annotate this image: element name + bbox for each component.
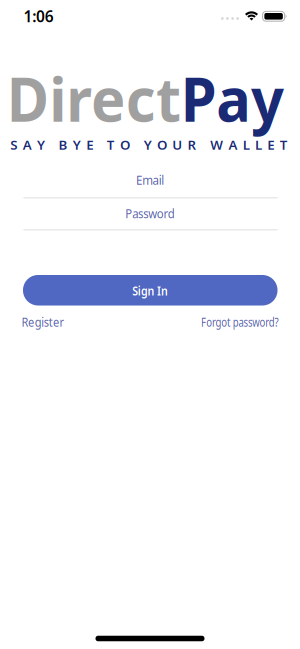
staticText: O (120, 136, 130, 153)
staticText: A (228, 136, 237, 153)
staticText: 1:06 (23, 5, 54, 27)
staticText: Y (73, 136, 81, 153)
staticText: Register (17, 313, 69, 330)
staticText: A (23, 136, 32, 153)
staticText: T (280, 136, 288, 153)
staticText: S (10, 136, 17, 153)
staticText: Y (37, 136, 45, 153)
staticText: Sign In (128, 281, 173, 299)
staticText: T (107, 136, 115, 153)
staticText: L (255, 136, 262, 153)
staticText: L (243, 136, 250, 153)
staticText: E (86, 136, 93, 153)
staticText: Password (121, 204, 179, 222)
staticText: Direct (0, 49, 191, 148)
staticText: O (157, 136, 167, 153)
button[interactable]: Sign In (23, 275, 277, 305)
staticText: Y (144, 136, 152, 153)
staticText: B (59, 136, 68, 153)
button[interactable]: Register (17, 313, 69, 330)
staticText: Email (134, 171, 166, 188)
staticText: R (188, 136, 197, 153)
button[interactable]: Forgot password? (186, 313, 294, 330)
staticText: E (267, 136, 274, 153)
staticText: Forgot password? (186, 313, 294, 330)
staticText: W (210, 136, 223, 153)
staticText: Pay (191, 49, 300, 148)
staticText: U (172, 136, 182, 153)
